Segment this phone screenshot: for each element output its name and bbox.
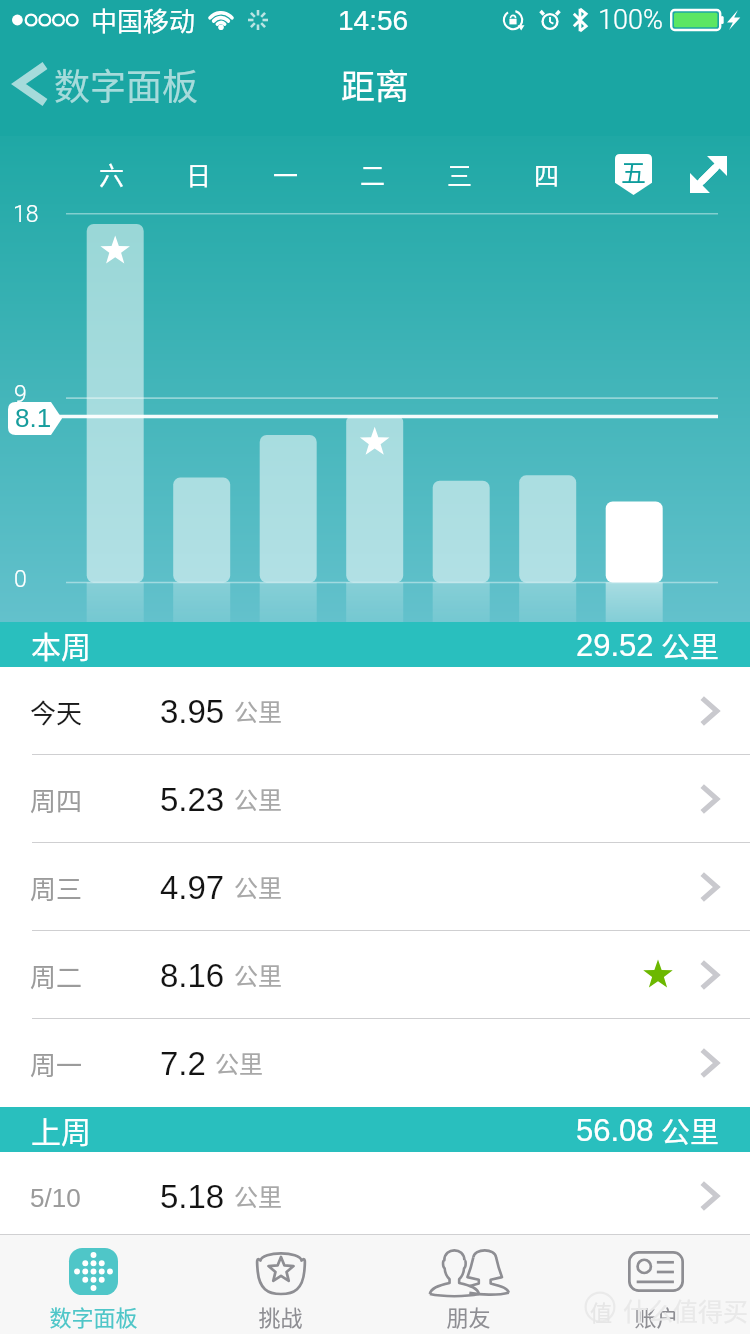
- staticText: 9: [14, 381, 27, 408]
- button[interactable]: 上周: [0, 1107, 750, 1152]
- staticText: 周二: [30, 957, 83, 995]
- staticText: 公里: [234, 1178, 282, 1213]
- button[interactable]: 今天: [0, 667, 750, 755]
- staticText: 今天: [30, 693, 83, 731]
- staticText: 公里: [661, 1109, 720, 1151]
- button[interactable]: 四: [503, 136, 590, 212]
- staticText: 四: [534, 156, 560, 192]
- button[interactable]: 挑战: [187, 1235, 374, 1334]
- staticText: 数字面板: [49, 1300, 138, 1332]
- staticText: 日: [186, 156, 212, 192]
- staticText: 8.1: [15, 403, 52, 432]
- staticText: 56.08: [576, 1113, 654, 1148]
- staticText: 本周: [31, 623, 91, 666]
- staticText: 8.16: [160, 957, 225, 994]
- staticText: 上周: [31, 1108, 91, 1151]
- button[interactable]: 日: [155, 136, 242, 212]
- staticText: 公里: [215, 1045, 263, 1080]
- staticText: 公里: [234, 957, 282, 992]
- staticText: 周四: [30, 781, 83, 819]
- button[interactable]: 数字面板: [0, 52, 213, 116]
- button[interactable]: 周四: [0, 755, 750, 843]
- staticText: 挑战: [258, 1300, 303, 1332]
- staticText: 距离: [341, 60, 409, 109]
- staticText: 朋友: [446, 1300, 491, 1332]
- button[interactable]: 朋友: [374, 1235, 562, 1334]
- button[interactable]: 周三: [0, 843, 750, 931]
- staticText: 周一: [30, 1045, 83, 1083]
- staticText: 公里: [661, 624, 720, 666]
- button[interactable]: 账户: [562, 1235, 750, 1334]
- button[interactable]: 二: [329, 136, 416, 212]
- button[interactable]: 周一: [0, 1019, 750, 1107]
- staticText: 18: [13, 201, 39, 228]
- button[interactable]: 三: [416, 136, 503, 212]
- button[interactable]: 本周: [0, 622, 750, 667]
- button[interactable]: 5/10: [0, 1152, 750, 1240]
- staticText: 7.2: [160, 1045, 206, 1082]
- staticText: 公里: [234, 693, 282, 728]
- staticText: 周三: [30, 869, 83, 907]
- staticText: 100%: [598, 4, 663, 36]
- staticText: 3.95: [160, 693, 225, 730]
- staticText: 5.18: [160, 1178, 225, 1215]
- button[interactable]: 数字面板: [0, 1235, 187, 1334]
- staticText: 六: [99, 156, 125, 192]
- button[interactable]: 五: [590, 136, 677, 212]
- staticText: 什么值得买: [623, 1292, 749, 1328]
- button[interactable]: 六: [68, 136, 155, 212]
- staticText: 公里: [234, 869, 282, 904]
- staticText: 三: [447, 156, 473, 192]
- staticText: 值: [590, 1295, 613, 1327]
- staticText: 0: [14, 566, 27, 593]
- button[interactable]: 一: [242, 136, 329, 212]
- staticText: 29.52: [576, 628, 654, 663]
- staticText: 二: [360, 156, 386, 192]
- button[interactable]: Expand chart: [677, 136, 750, 212]
- staticText: 公里: [234, 781, 282, 816]
- staticText: 五: [621, 153, 647, 189]
- staticText: 数字面板: [54, 58, 199, 110]
- staticText: 中国移动: [91, 1, 196, 39]
- staticText: 4.97: [160, 869, 225, 906]
- staticText: 14:56: [338, 5, 409, 36]
- staticText: 一: [273, 156, 299, 192]
- staticText: 5.23: [160, 781, 225, 818]
- staticText: 账户: [634, 1300, 679, 1332]
- button[interactable]: 周二: [0, 931, 750, 1019]
- staticText: 5/10: [30, 1183, 81, 1212]
